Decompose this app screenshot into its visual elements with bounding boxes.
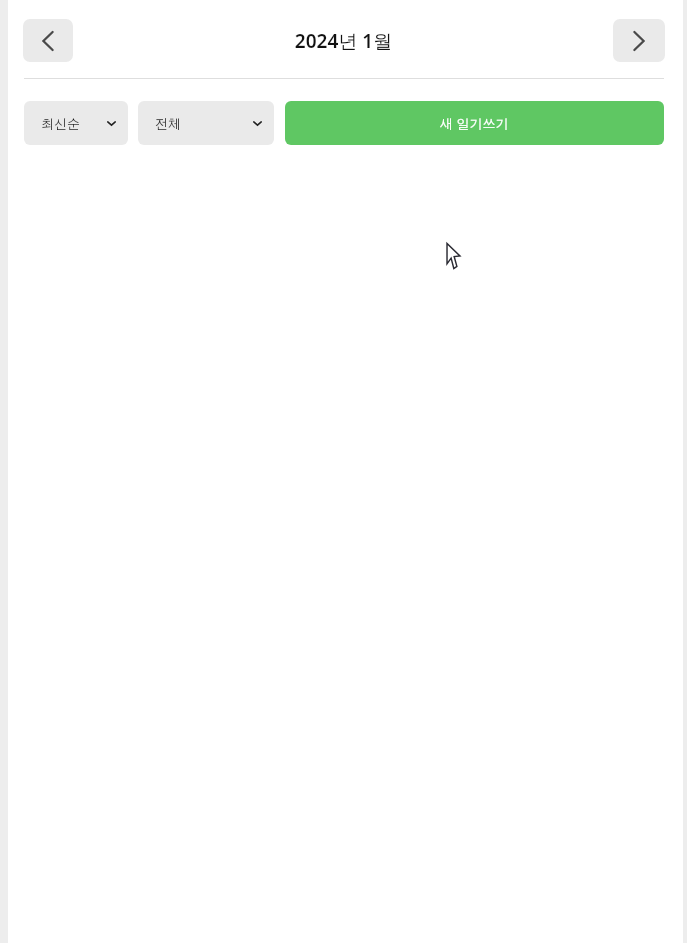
button[interactable]: 이전 달 <box>23 19 73 62</box>
staticText: 전체 <box>155 115 181 131</box>
staticText: 2024년 1월 <box>0 28 687 54</box>
staticText: 최신순 <box>41 115 80 131</box>
button[interactable]: 새 일기쓰기 <box>285 101 664 145</box>
button[interactable]: 다음 달 <box>613 19 665 62</box>
button[interactable]: 최신순 <box>24 101 128 145</box>
button[interactable]: 전체 <box>138 101 274 145</box>
staticText: 새 일기쓰기 <box>440 114 509 132</box>
